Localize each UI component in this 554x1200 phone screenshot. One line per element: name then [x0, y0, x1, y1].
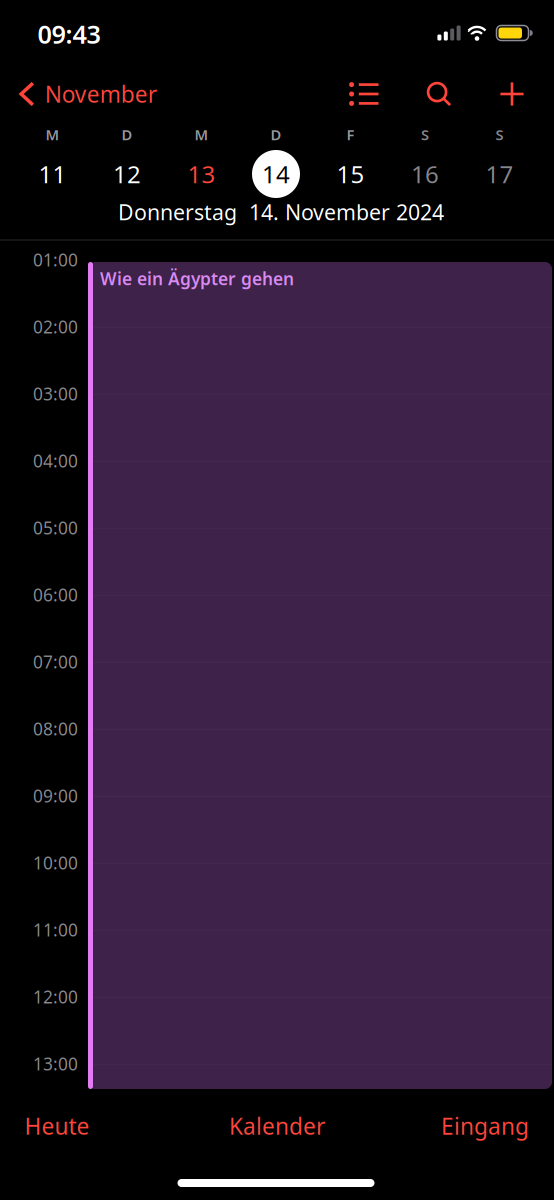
staticText: 13:00	[33, 1052, 78, 1075]
staticText: Wie ein Ägypter gehen	[100, 267, 294, 290]
staticText: November	[45, 79, 157, 109]
button[interactable]: Add event	[488, 70, 535, 117]
button[interactable]: November	[11, 70, 165, 118]
staticText: 03:00	[33, 382, 78, 405]
staticText: M	[45, 125, 59, 144]
button[interactable]: D	[239, 126, 313, 204]
staticText: 06:00	[33, 583, 78, 606]
button[interactable]: D	[90, 126, 164, 204]
button[interactable]: S	[462, 126, 536, 204]
staticText: S	[421, 125, 429, 144]
button[interactable]: S	[388, 126, 462, 204]
staticText: F	[346, 125, 354, 144]
staticText: Kalender	[229, 1111, 325, 1141]
staticText: 11:00	[33, 918, 78, 941]
button[interactable]: List view	[338, 71, 390, 117]
staticText: 04:00	[33, 449, 78, 472]
button[interactable]: Eingang	[393, 1098, 554, 1154]
staticText: 09:43	[37, 17, 100, 51]
staticText: 05:00	[33, 516, 78, 539]
staticText: 07:00	[33, 650, 78, 673]
button[interactable]: M	[15, 126, 89, 204]
staticText: 12:00	[33, 985, 78, 1008]
staticText: 01:00	[33, 248, 78, 271]
staticText: 17	[485, 158, 513, 190]
staticText: 10:00	[33, 851, 78, 874]
staticText: 12	[113, 158, 141, 190]
staticText: 15	[336, 158, 364, 190]
staticText: 13	[187, 158, 215, 190]
staticText: Eingang	[441, 1111, 529, 1141]
button[interactable]: Kalender	[185, 1098, 369, 1154]
button[interactable]: Heute	[0, 1098, 149, 1154]
button[interactable]: F	[313, 126, 387, 204]
button[interactable]: Search	[415, 70, 462, 117]
staticText: D	[270, 125, 281, 144]
staticText: S	[495, 125, 503, 144]
staticText: 14	[262, 158, 290, 190]
staticText: 08:00	[33, 717, 78, 740]
staticText: M	[194, 125, 208, 144]
staticText: Donnerstag 14. November 2024	[118, 198, 444, 226]
staticText: D	[121, 125, 132, 144]
staticText: 11	[38, 158, 66, 190]
staticText: Heute	[24, 1111, 89, 1141]
button[interactable]: M	[164, 126, 238, 204]
staticText: 09:00	[33, 784, 78, 807]
staticText: 02:00	[33, 315, 78, 338]
staticText: 16	[411, 158, 439, 190]
